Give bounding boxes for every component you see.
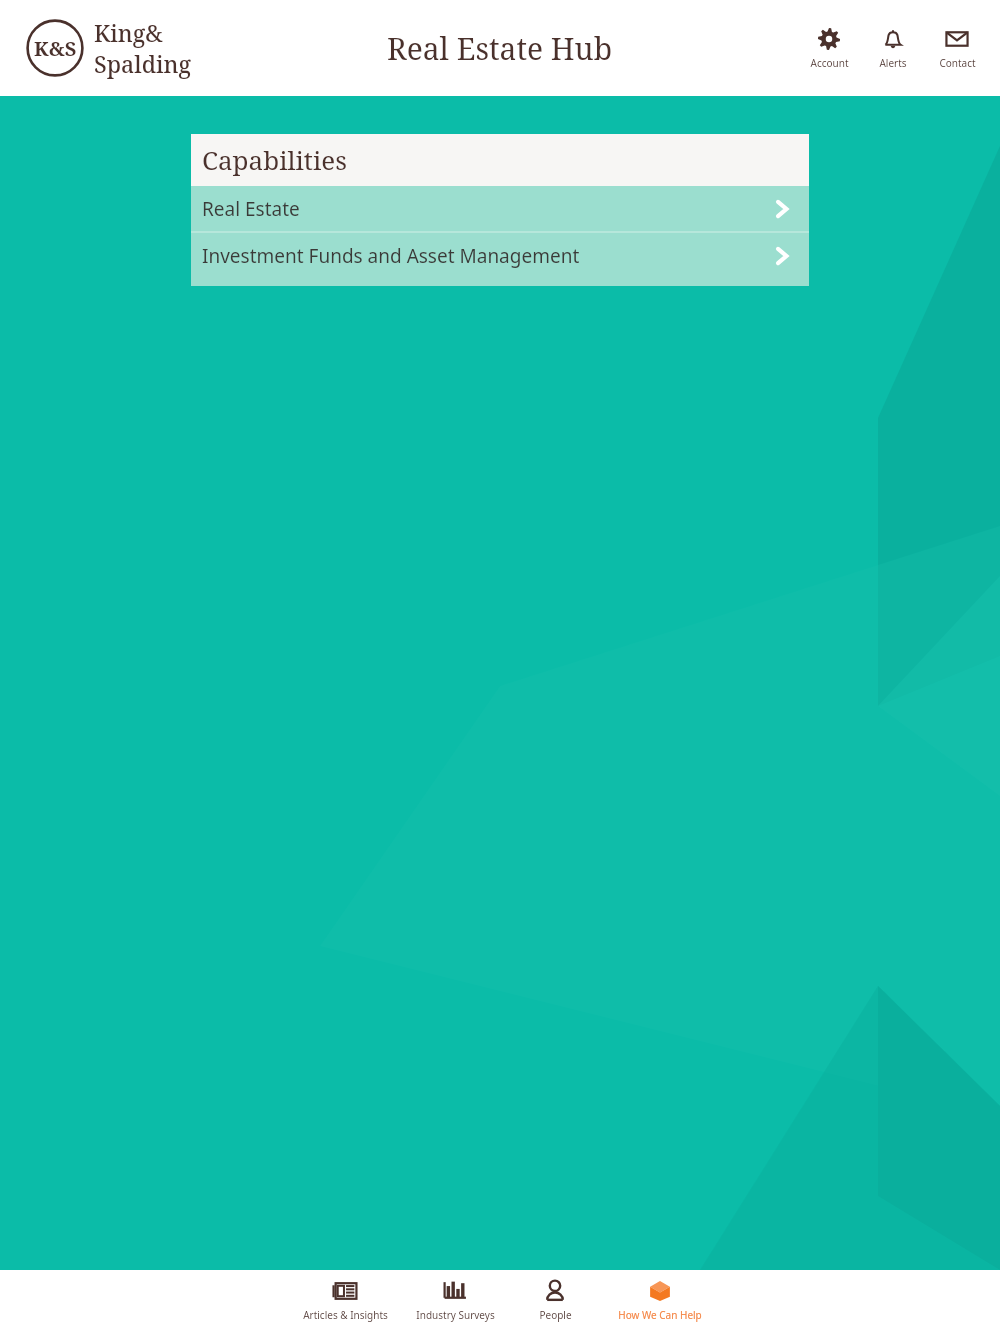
staticText: Real Estate Hub	[387, 28, 613, 69]
button[interactable]: Articles & Insights	[285, 1270, 405, 1334]
button[interactable]: Account	[804, 26, 854, 70]
staticText: Capabilities	[202, 142, 347, 177]
button[interactable]: People	[505, 1270, 605, 1334]
staticText: People	[539, 1308, 572, 1322]
staticText: Contact	[939, 56, 976, 70]
button[interactable]: Contact	[932, 26, 982, 70]
staticText: Investment Funds and Asset Management	[202, 243, 580, 269]
button[interactable]: Real Estate	[191, 186, 809, 231]
button[interactable]: Investment Funds and Asset Management	[191, 233, 809, 278]
staticText: How We Can Help	[618, 1308, 702, 1322]
staticText: Alerts	[879, 56, 907, 70]
staticText: Industry Surveys	[416, 1308, 495, 1322]
button[interactable]: Alerts	[868, 26, 918, 70]
staticText: K&S	[34, 35, 77, 62]
button[interactable]: Industry Surveys	[405, 1270, 505, 1334]
staticText: Real Estate	[202, 196, 300, 222]
button[interactable]: How We Can Help	[605, 1270, 715, 1334]
staticText: Account	[810, 56, 849, 70]
button[interactable]: King & Spalding home	[26, 17, 192, 79]
staticText: Articles & Insights	[303, 1308, 388, 1322]
button[interactable]: Capabilities	[191, 134, 809, 186]
staticText: Spalding	[94, 48, 192, 79]
staticText: King&	[94, 17, 163, 48]
